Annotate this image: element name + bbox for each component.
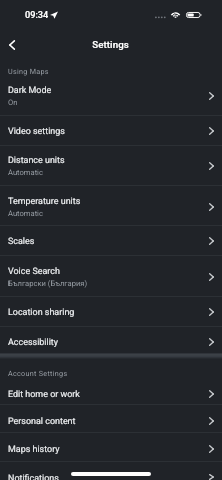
staticText: Personal content bbox=[8, 416, 76, 426]
button[interactable]: Maps history bbox=[0, 433, 222, 462]
button[interactable]: Location sharing bbox=[0, 297, 222, 327]
staticText: Български (България) bbox=[8, 279, 88, 288]
staticText: Settings bbox=[92, 39, 129, 50]
staticText: Account Settings bbox=[8, 369, 68, 377]
staticText: Voice Search bbox=[8, 266, 60, 276]
staticText: 09:34 bbox=[25, 9, 49, 20]
staticText: Distance units bbox=[8, 155, 65, 165]
staticText: Video settings bbox=[8, 126, 65, 136]
button[interactable]: Personal content bbox=[0, 405, 222, 433]
staticText: Automatic bbox=[8, 209, 43, 218]
button[interactable]: Temperature units bbox=[0, 186, 222, 226]
staticText: Automatic bbox=[8, 168, 43, 177]
staticText: Dark Mode bbox=[8, 85, 52, 95]
staticText: Notifications bbox=[8, 473, 59, 480]
button[interactable]: Back bbox=[3, 36, 20, 53]
staticText: Scales bbox=[8, 236, 35, 246]
staticText: Using Maps bbox=[8, 67, 49, 75]
button[interactable]: Video settings bbox=[0, 116, 222, 146]
staticText: Edit home or work bbox=[8, 389, 80, 399]
button[interactable]: Accessibility bbox=[0, 327, 222, 353]
button[interactable]: Notifications bbox=[0, 462, 222, 480]
staticText: On bbox=[8, 98, 18, 107]
button[interactable]: Distance units bbox=[0, 146, 222, 186]
button[interactable]: Dark Mode bbox=[0, 75, 222, 116]
button[interactable]: Edit home or work bbox=[0, 380, 222, 405]
button[interactable]: Voice Search bbox=[0, 256, 222, 297]
staticText: Temperature units bbox=[8, 196, 81, 206]
staticText: Location sharing bbox=[8, 307, 75, 317]
staticText: Maps history bbox=[8, 444, 60, 454]
button[interactable]: Scales bbox=[0, 226, 222, 256]
staticText: Accessibility bbox=[8, 337, 59, 347]
